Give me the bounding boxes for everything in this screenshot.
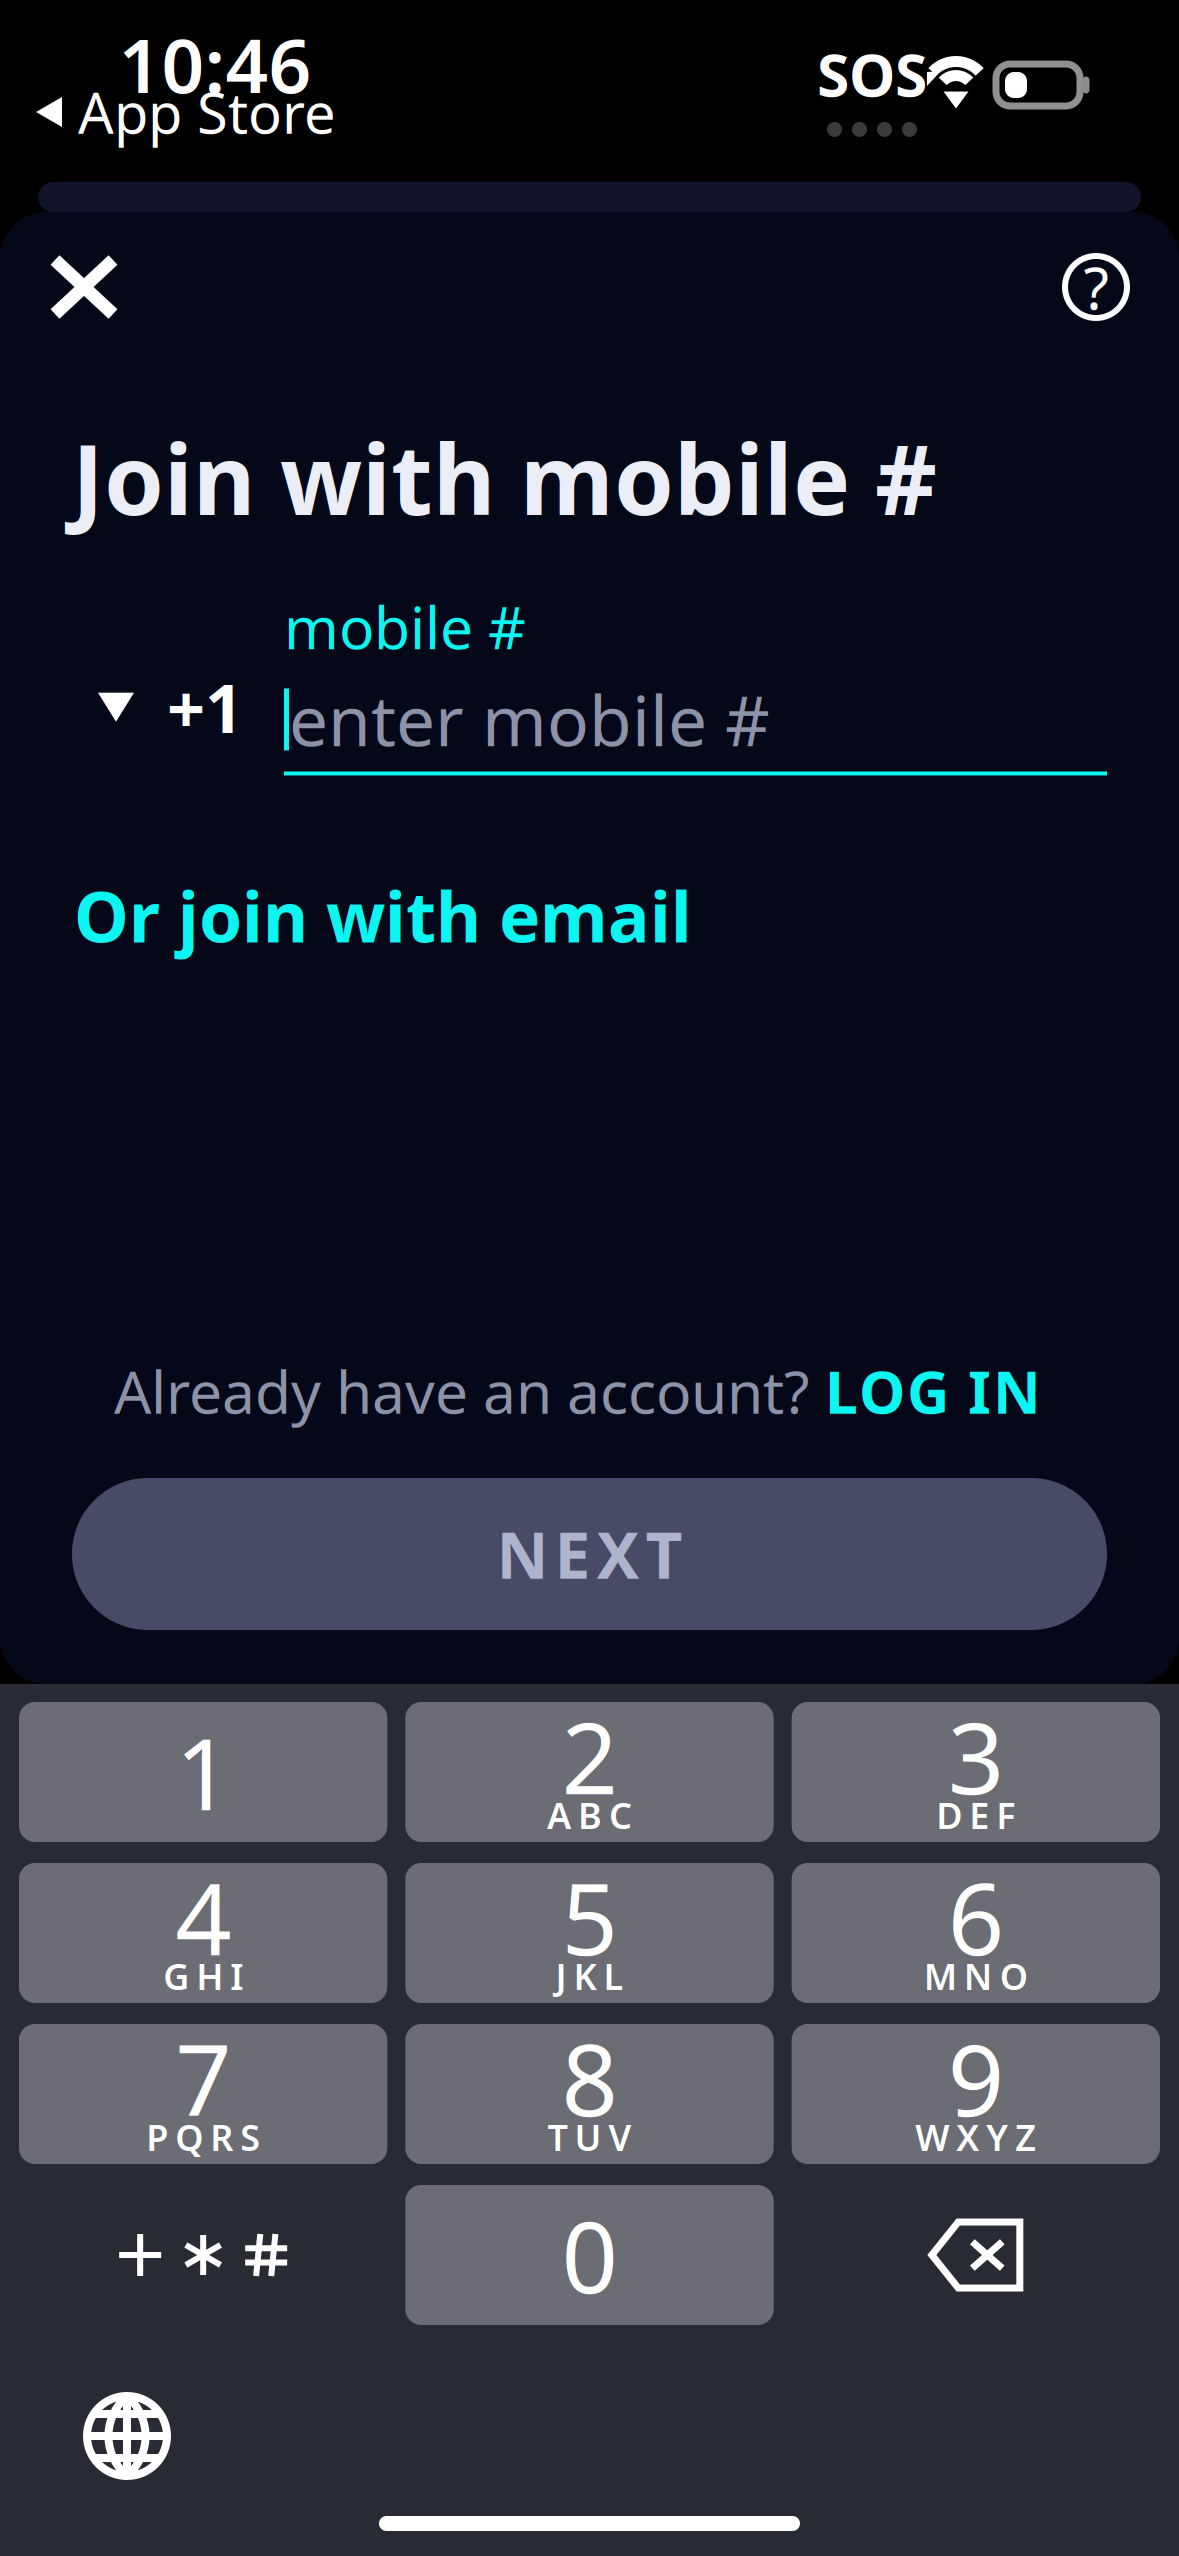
staticText: 10:46 <box>118 14 311 114</box>
staticText: 1 <box>175 1706 231 1837</box>
button[interactable]: 7 <box>19 2024 387 2164</box>
staticText: 9 <box>948 2012 1004 2143</box>
button[interactable]: 1 <box>19 1702 387 1842</box>
button[interactable]: 5 <box>405 1863 774 2003</box>
button[interactable]: 9 <box>792 2024 1160 2164</box>
staticText: ? <box>1083 248 1108 326</box>
button[interactable]: 3 <box>792 1702 1160 1842</box>
staticText: JKL <box>555 1952 623 2000</box>
staticText: 5 <box>561 1851 617 1982</box>
staticText: 2 <box>561 1690 617 1821</box>
staticText: App Store <box>78 75 336 149</box>
button[interactable]: Help <box>1045 236 1147 338</box>
staticText: 7 <box>175 2012 231 2143</box>
staticText: TUV <box>547 2113 631 2161</box>
staticText: +1 <box>167 663 243 751</box>
staticText: Join with mobile # <box>72 414 937 541</box>
staticText: PQRS <box>146 2113 260 2161</box>
staticText: 0 <box>561 2189 617 2320</box>
staticText: DEF <box>936 1791 1015 1839</box>
staticText: Already have an account? <box>114 1352 809 1430</box>
staticText: GHI <box>163 1952 243 2000</box>
staticText: MNO <box>924 1952 1028 2000</box>
button[interactable]: 6 <box>792 1863 1160 2003</box>
button[interactable]: 2 <box>405 1702 774 1842</box>
staticText: Or join with email <box>74 869 692 962</box>
button[interactable]: Country code <box>98 663 284 775</box>
button[interactable]: NEXT <box>72 1478 1107 1630</box>
button[interactable]: 4 <box>19 1863 387 2003</box>
staticText: 4 <box>175 1851 231 1982</box>
button[interactable]: Or join with email <box>0 775 766 986</box>
staticText: NEXT <box>496 1511 682 1596</box>
button[interactable]: 8 <box>405 2024 774 2164</box>
button[interactable]: Close <box>33 238 135 336</box>
button[interactable]: Already have an account? <box>39 1352 1139 1430</box>
button[interactable]: Next keyboard <box>63 2372 191 2500</box>
staticText: SOS <box>817 35 927 113</box>
button[interactable]: 0 <box>405 2185 774 2325</box>
button[interactable]: Delete <box>792 2185 1160 2325</box>
staticText: ABC <box>547 1791 632 1839</box>
staticText: LOG IN <box>825 1352 1041 1430</box>
staticText: 6 <box>948 1851 1004 1982</box>
staticText: 8 <box>561 2012 617 2143</box>
staticText: WXYZ <box>915 2113 1036 2161</box>
staticText: 3 <box>948 1690 1004 1821</box>
button[interactable]: Plus, asterisk, pound <box>19 2185 387 2325</box>
staticText: mobile # <box>284 587 526 665</box>
staticText: enter mobile # <box>289 673 770 765</box>
